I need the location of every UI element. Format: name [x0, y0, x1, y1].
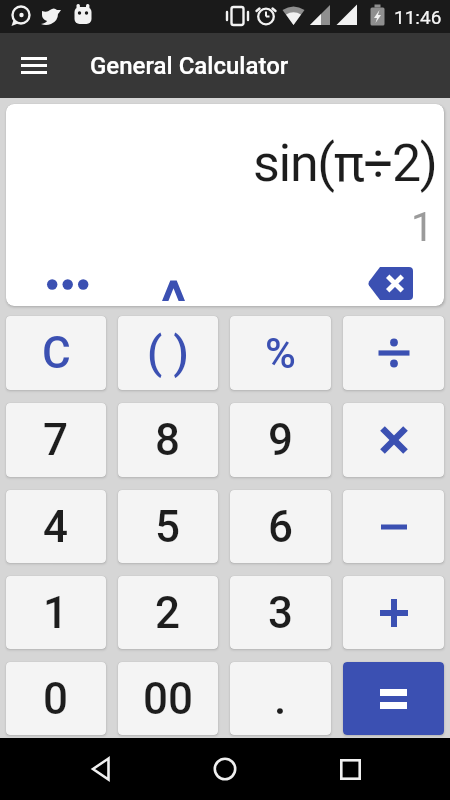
button[interactable]: 0 — [6, 662, 106, 735]
staticText: % — [265, 329, 296, 378]
staticText: 0 — [43, 673, 69, 725]
staticText: 9 — [268, 414, 294, 466]
button[interactable]: ( ) — [118, 316, 218, 390]
button[interactable] — [343, 576, 444, 649]
button[interactable] — [343, 490, 444, 563]
staticText: 6 — [268, 501, 294, 553]
button[interactable]: 9 — [230, 403, 331, 477]
staticText: General Calculator — [90, 52, 289, 80]
button[interactable] — [326, 745, 374, 793]
button[interactable] — [368, 267, 413, 300]
staticText: 00 — [143, 673, 194, 725]
button[interactable]: 2 — [118, 576, 218, 649]
button[interactable] — [12, 44, 56, 88]
button[interactable]: . — [230, 662, 331, 735]
button[interactable]: 1 — [6, 576, 106, 649]
staticText: sin(π÷2) — [253, 133, 437, 194]
button[interactable]: 7 — [6, 403, 106, 477]
button[interactable]: 00 — [118, 662, 218, 735]
button[interactable] — [77, 745, 125, 793]
button[interactable] — [201, 745, 249, 793]
button[interactable] — [343, 662, 444, 735]
button[interactable]: % — [230, 316, 331, 390]
button[interactable]: 8 — [118, 403, 218, 477]
staticText: 3 — [268, 587, 294, 639]
button[interactable]: C — [6, 316, 106, 390]
staticText: . — [274, 673, 287, 725]
staticText: 7 — [43, 414, 69, 466]
staticText: 4 — [43, 501, 69, 553]
button[interactable]: 3 — [230, 576, 331, 649]
button[interactable] — [343, 403, 444, 477]
staticText: C — [42, 327, 71, 379]
button[interactable]: 5 — [118, 490, 218, 563]
staticText: 2 — [155, 587, 181, 639]
button[interactable]: 4 — [6, 490, 106, 563]
staticText: 1 — [43, 587, 69, 639]
staticText: 11:46 — [394, 6, 442, 28]
staticText: 8 — [155, 414, 181, 466]
button[interactable]: 6 — [230, 490, 331, 563]
button[interactable] — [38, 272, 98, 296]
staticText: 1 — [411, 204, 434, 251]
button[interactable] — [343, 316, 444, 390]
staticText: 5 — [155, 501, 181, 553]
button[interactable] — [151, 276, 195, 304]
staticText: ( ) — [147, 327, 189, 379]
